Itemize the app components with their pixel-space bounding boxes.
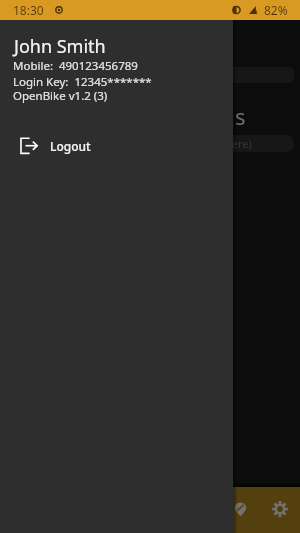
staticText: Login Key: 12345******* [13,74,152,90]
staticText: Search for a station [15,68,107,82]
staticText: Nearby stations [83,101,246,131]
button[interactable]: Logout [0,129,233,163]
staticText: (no stations near here) [135,136,252,151]
button[interactable]: Location off [220,489,260,529]
staticText: Logout [50,138,91,154]
staticText: 18:30 [13,2,44,18]
button[interactable]: Settings [260,489,300,529]
staticText: OpenBike v1.2 (3) [13,88,108,104]
button[interactable]: Search for a station [6,67,294,83]
staticText: 82% [264,2,288,18]
staticText: John Smith [14,34,106,59]
staticText: Mobile: 490123456789 [13,58,138,74]
button[interactable]: (no stations near here) [6,135,294,152]
